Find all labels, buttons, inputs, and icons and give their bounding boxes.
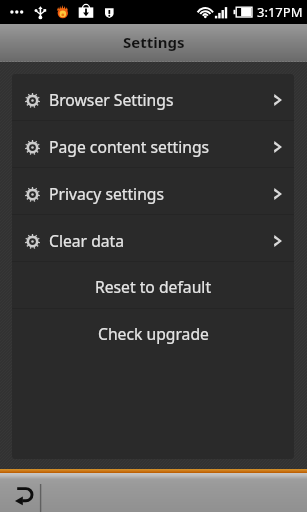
- button[interactable]: Browser Settings: [12, 74, 294, 120]
- staticText: Clear data: [49, 230, 125, 251]
- staticText: Browser Settings: [49, 89, 174, 110]
- staticText: 3:17PM: [257, 3, 303, 21]
- button[interactable]: Clear data: [12, 215, 294, 261]
- staticText: Page content settings: [49, 136, 210, 157]
- button[interactable]: Page content settings: [12, 121, 294, 167]
- staticText: Privacy settings: [49, 183, 164, 204]
- staticText: Reset to default: [95, 276, 212, 297]
- staticText: Check upgrade: [98, 323, 209, 344]
- button[interactable]: Privacy settings: [12, 168, 294, 214]
- button[interactable]: Back: [0, 473, 41, 512]
- button[interactable]: Check upgrade: [12, 309, 294, 355]
- button[interactable]: Reset to default: [12, 262, 294, 308]
- staticText: Settings: [123, 32, 185, 52]
